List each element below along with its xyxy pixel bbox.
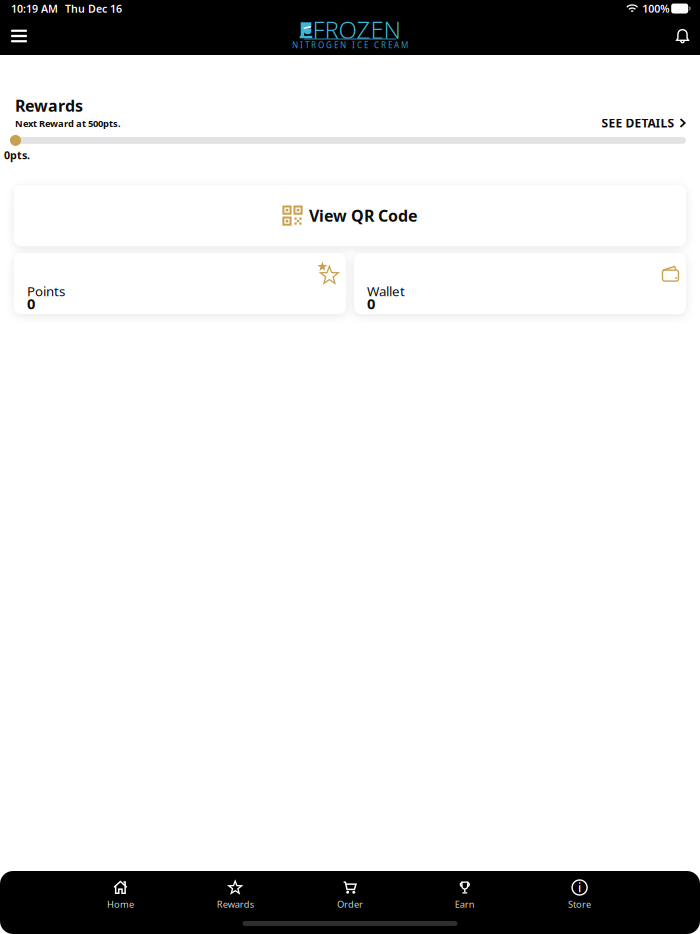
staticText: 100% xyxy=(642,1,669,16)
staticText: i xyxy=(578,879,581,895)
button[interactable]: Notifications xyxy=(659,17,700,54)
staticText: Order xyxy=(337,898,363,910)
staticText: 10:19 AM xyxy=(11,1,58,16)
staticText: Points xyxy=(27,282,65,300)
staticText: Wallet xyxy=(367,282,405,300)
staticText: 0 xyxy=(27,294,35,313)
staticText: Rewards xyxy=(15,95,83,116)
staticText: Rewards xyxy=(217,898,254,910)
staticText: SEE DETAILS xyxy=(601,115,674,131)
staticText: FROZEN xyxy=(312,13,400,45)
button[interactable]: Wallet xyxy=(354,253,686,314)
button[interactable]: i xyxy=(522,880,637,910)
staticText: Store xyxy=(568,898,591,910)
button[interactable]: Rewards xyxy=(178,880,293,910)
staticText: 0pts. xyxy=(4,148,30,162)
button[interactable]: Menu xyxy=(0,19,41,52)
button[interactable]: Points xyxy=(14,253,346,314)
button[interactable]: View QR Code xyxy=(14,185,686,246)
button[interactable]: Earn xyxy=(407,880,522,910)
staticText: View QR Code xyxy=(309,205,418,226)
staticText: 0 xyxy=(367,294,375,313)
staticText: N I T R O G E N I C E C R E A M xyxy=(292,40,408,50)
button[interactable]: SEE DETAILS xyxy=(601,97,686,131)
staticText: Next Reward at 500pts. xyxy=(15,117,121,130)
staticText: Earn xyxy=(455,898,475,910)
button[interactable]: Order xyxy=(293,880,407,910)
staticText: Home xyxy=(107,898,134,910)
staticText: Thu Dec 16 xyxy=(65,1,122,16)
button[interactable]: Home xyxy=(63,880,178,910)
